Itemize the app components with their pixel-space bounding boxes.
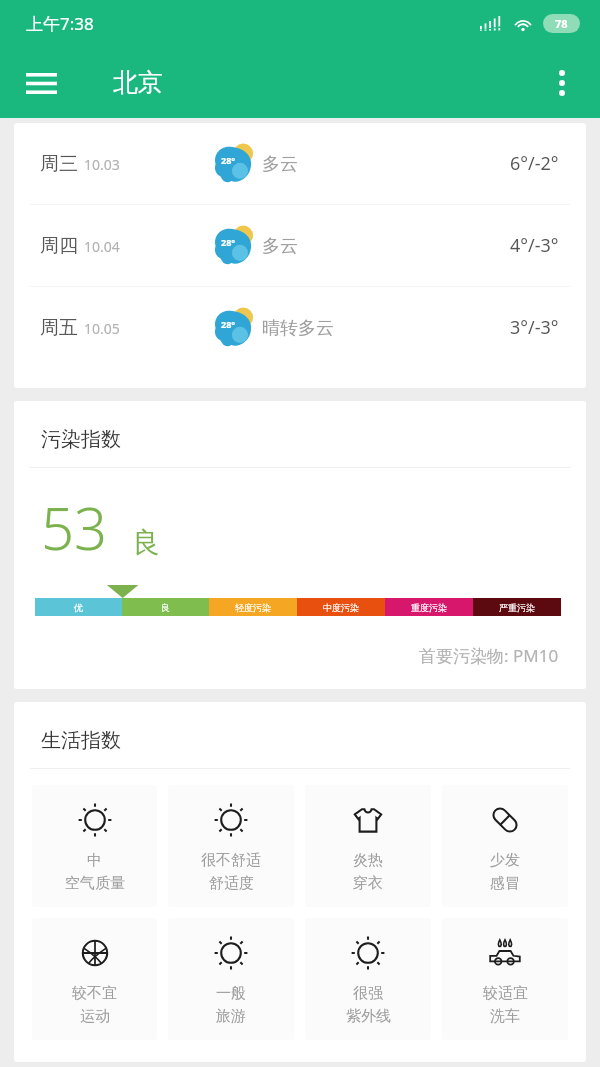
staticText: 轻度污染 [235, 602, 271, 613]
staticText: 很不舒适 [201, 851, 261, 870]
button[interactable]: 一般 [168, 918, 294, 1040]
staticText: 多云 [262, 235, 298, 258]
staticText: 周四 [40, 234, 78, 258]
staticText: 中度污染 [323, 602, 359, 613]
staticText: 晴转多云 [262, 317, 334, 340]
staticText: 10.03 [84, 155, 120, 174]
staticText: 一般 [216, 984, 246, 1003]
button[interactable]: 周三 [14, 123, 586, 204]
staticText: 生活指数 [41, 728, 121, 753]
staticText: 穿衣 [353, 874, 383, 893]
staticText: 优 [74, 602, 83, 613]
button[interactable]: 很强 [305, 918, 431, 1040]
staticText: 良 [161, 602, 170, 613]
button[interactable]: 较不宜 [32, 918, 157, 1040]
staticText: 78 [555, 16, 568, 31]
staticText: 紫外线 [346, 1007, 391, 1026]
button[interactable]: 很不舒适 [168, 785, 294, 907]
button[interactable]: 较适宜 [442, 918, 568, 1040]
staticText: 10.04 [84, 237, 120, 256]
staticText: 中 [87, 851, 102, 870]
button[interactable]: 中 [32, 785, 157, 907]
staticText: 污染指数 [41, 427, 121, 452]
button[interactable]: 周五 [14, 287, 586, 368]
staticText: 感冒 [490, 874, 520, 893]
staticText: 北京 [113, 67, 163, 98]
staticText: 周五 [40, 316, 78, 340]
staticText: 28° [221, 154, 236, 166]
staticText: 28° [221, 318, 236, 330]
staticText: 28° [221, 236, 236, 248]
staticText: 炎热 [353, 851, 383, 870]
staticText: 严重污染 [499, 602, 535, 613]
staticText: 首要污染物: PM10 [419, 644, 559, 667]
staticText: 洗车 [490, 1007, 520, 1026]
staticText: 空气质量 [65, 874, 125, 893]
staticText: 多云 [262, 153, 298, 176]
staticText: 重度污染 [411, 602, 447, 613]
staticText: 6°/-2° [510, 151, 559, 176]
staticText: 较适宜 [483, 984, 528, 1003]
staticText: 运动 [80, 1007, 110, 1026]
staticText: 10.05 [84, 319, 120, 338]
staticText: 舒适度 [209, 874, 254, 893]
staticText: 3°/-3° [510, 315, 559, 340]
staticText: 很强 [353, 984, 383, 1003]
staticText: 周三 [40, 152, 78, 176]
button[interactable]: 周四 [14, 205, 586, 286]
button[interactable]: 炎热 [305, 785, 431, 907]
button[interactable]: More options [536, 57, 588, 109]
staticText: 上午7:38 [26, 12, 94, 35]
button[interactable]: Menu [12, 54, 70, 112]
staticText: 旅游 [216, 1007, 246, 1026]
button[interactable]: 少发 [442, 785, 568, 907]
staticText: 较不宜 [72, 984, 117, 1003]
staticText: 少发 [490, 851, 520, 870]
staticText: 53 [41, 488, 108, 567]
staticText: 良 [132, 525, 160, 560]
staticText: 4°/-3° [510, 233, 559, 258]
